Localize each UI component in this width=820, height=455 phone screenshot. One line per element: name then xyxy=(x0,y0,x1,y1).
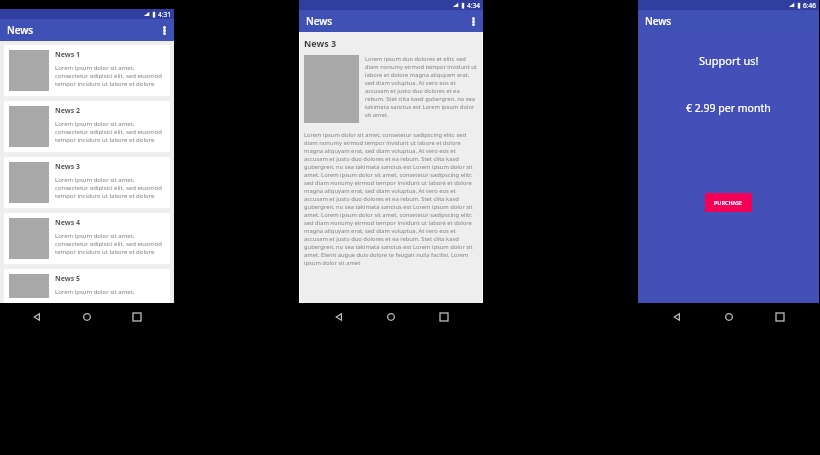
staticText: News 4 xyxy=(55,218,81,228)
button[interactable]: Recent apps xyxy=(767,304,793,330)
staticText: News 3 xyxy=(304,37,337,49)
button[interactable]: News 5 xyxy=(4,269,170,303)
button[interactable]: More options xyxy=(463,10,483,32)
staticText: 6:46 xyxy=(803,1,816,10)
button[interactable]: Back xyxy=(664,304,690,330)
staticText: Lorem ipsum duo dolores et elitr, sed di… xyxy=(365,55,478,119)
staticText: News xyxy=(306,14,333,28)
staticText: News 3 xyxy=(55,162,81,172)
button[interactable]: More options xyxy=(154,19,174,41)
staticText: PURCHASE xyxy=(714,199,743,206)
button[interactable]: Home xyxy=(378,304,404,330)
button[interactable]: Back xyxy=(326,304,352,330)
staticText: News xyxy=(645,14,672,28)
staticText: Support us! xyxy=(699,53,759,68)
staticText: Lorem ipsum dolor sit amet, consectetur … xyxy=(55,120,165,144)
button[interactable]: PURCHASE xyxy=(705,193,752,212)
staticText: News 2 xyxy=(55,106,81,116)
staticText: 4:31 xyxy=(158,10,171,19)
button[interactable]: Home xyxy=(74,304,100,330)
button[interactable]: Back xyxy=(24,304,50,330)
staticText: Lorem ipsum dolor sit amet, consectetur … xyxy=(55,288,165,298)
staticText: News xyxy=(7,23,34,37)
staticText: 4:34 xyxy=(467,1,480,10)
staticText: € 2.99 per month xyxy=(686,101,771,115)
button[interactable]: Recent apps xyxy=(124,304,150,330)
staticText: Lorem ipsum dolor sit amet, consectetur … xyxy=(55,64,165,88)
button[interactable]: News 4 xyxy=(4,213,170,264)
staticText: Lorem ipsum dolor sit amet, consetetur s… xyxy=(304,131,478,267)
staticText: Lorem ipsum dolor sit amet, consectetur … xyxy=(55,232,165,256)
button[interactable]: Recent apps xyxy=(431,304,457,330)
staticText: Lorem ipsum dolor sit amet, consectetur … xyxy=(55,176,165,200)
button[interactable]: Home xyxy=(716,304,742,330)
button[interactable]: News 2 xyxy=(4,101,170,152)
button[interactable]: News 3 xyxy=(4,157,170,208)
staticText: News 1 xyxy=(55,50,81,60)
button[interactable]: News 1 xyxy=(4,45,170,96)
staticText: News 5 xyxy=(55,274,81,284)
